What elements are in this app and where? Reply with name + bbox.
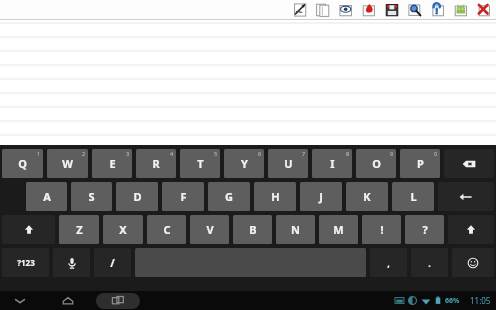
staticText: C bbox=[163, 222, 171, 237]
button[interactable]: J bbox=[300, 182, 342, 211]
button[interactable]: K bbox=[346, 182, 388, 211]
button[interactable]: N bbox=[276, 215, 315, 244]
button[interactable]: Hide keyboard bbox=[6, 292, 34, 310]
staticText: 8 bbox=[346, 150, 350, 157]
staticText: ! bbox=[380, 222, 384, 237]
staticText: P bbox=[417, 156, 424, 171]
button[interactable]: Search bbox=[406, 1, 424, 19]
staticText: / bbox=[110, 255, 115, 270]
button[interactable]: H bbox=[254, 182, 296, 211]
staticText: Q bbox=[18, 156, 27, 171]
staticText: 6 bbox=[258, 150, 262, 157]
staticText: Z bbox=[76, 222, 83, 237]
button[interactable]: T bbox=[180, 149, 220, 178]
staticText: A bbox=[43, 189, 51, 204]
staticText: ?123 bbox=[17, 257, 35, 268]
button[interactable]: R bbox=[136, 149, 176, 178]
button[interactable]: backspace bbox=[444, 149, 494, 178]
staticText: U bbox=[284, 156, 293, 171]
staticText: F bbox=[180, 189, 187, 204]
button[interactable]: W bbox=[47, 149, 88, 178]
button[interactable]: Recent apps bbox=[96, 293, 140, 309]
staticText: ? bbox=[422, 222, 428, 237]
button[interactable]: X bbox=[103, 215, 143, 244]
staticText: . bbox=[428, 257, 431, 269]
button[interactable]: B bbox=[233, 215, 272, 244]
staticText: L bbox=[410, 189, 417, 204]
staticText: O bbox=[372, 156, 381, 171]
button[interactable]: Save bbox=[383, 1, 401, 19]
button[interactable]: E bbox=[92, 149, 132, 178]
button[interactable]: enter bbox=[438, 182, 494, 211]
button[interactable]: ?123 bbox=[2, 248, 49, 277]
staticText: J bbox=[319, 189, 323, 204]
button[interactable]: A bbox=[26, 182, 67, 211]
button[interactable]: Close bbox=[475, 1, 493, 19]
staticText: Y bbox=[241, 156, 248, 171]
button[interactable]: , bbox=[370, 248, 407, 277]
button[interactable]: Home bbox=[54, 292, 82, 310]
staticText: , bbox=[387, 257, 390, 269]
staticText: N bbox=[291, 222, 300, 237]
staticText: M bbox=[333, 222, 344, 237]
staticText: T bbox=[197, 156, 204, 171]
staticText: 9 bbox=[390, 150, 394, 157]
button[interactable]: Z bbox=[59, 215, 99, 244]
staticText: B bbox=[249, 222, 257, 237]
staticText: I bbox=[330, 156, 335, 171]
staticText: 5 bbox=[214, 150, 218, 157]
button[interactable]: shift bbox=[448, 215, 494, 244]
staticText: V bbox=[206, 222, 214, 237]
button[interactable]: L bbox=[392, 182, 434, 211]
staticText: W bbox=[62, 156, 73, 171]
button[interactable]: Undo bbox=[291, 1, 309, 19]
button[interactable]: Q bbox=[2, 149, 43, 178]
button[interactable]: New page bbox=[314, 1, 332, 19]
button[interactable]: M bbox=[319, 215, 358, 244]
staticText: R bbox=[152, 156, 160, 171]
staticText: 2 bbox=[82, 150, 86, 157]
button[interactable]: / bbox=[94, 248, 131, 277]
staticText: S bbox=[88, 189, 95, 204]
staticText: E bbox=[109, 156, 116, 171]
staticText: K bbox=[363, 189, 371, 204]
button[interactable]: Ink colour bbox=[360, 1, 378, 19]
button[interactable]: emoji bbox=[452, 248, 494, 277]
button[interactable]: ? bbox=[405, 215, 444, 244]
button[interactable]: . bbox=[411, 248, 448, 277]
button[interactable]: shift bbox=[2, 215, 55, 244]
button[interactable]: D bbox=[116, 182, 158, 211]
button[interactable]: Y bbox=[224, 149, 264, 178]
button[interactable]: U bbox=[268, 149, 308, 178]
button[interactable]: View bbox=[337, 1, 355, 19]
button[interactable]: S bbox=[71, 182, 112, 211]
button[interactable]: P bbox=[400, 149, 440, 178]
staticText: 66% bbox=[445, 296, 460, 306]
button[interactable]: Help bbox=[429, 1, 447, 19]
button[interactable]: F bbox=[162, 182, 204, 211]
staticText: 4 bbox=[170, 150, 174, 157]
staticText: 3 bbox=[126, 150, 130, 157]
button[interactable]: ! bbox=[362, 215, 401, 244]
staticText: 7 bbox=[302, 150, 306, 157]
staticText: 0 bbox=[434, 150, 438, 157]
button[interactable]: I bbox=[312, 149, 352, 178]
staticText: X bbox=[119, 222, 127, 237]
button[interactable]: C bbox=[147, 215, 186, 244]
staticText: D bbox=[133, 189, 142, 204]
button[interactable]: O bbox=[356, 149, 396, 178]
button[interactable]: G bbox=[208, 182, 250, 211]
button[interactable]: mic bbox=[53, 248, 90, 277]
staticText: 1 bbox=[37, 150, 41, 157]
staticText: H bbox=[271, 189, 280, 204]
staticText: 11:05 bbox=[470, 295, 491, 306]
staticText: G bbox=[225, 189, 233, 204]
button[interactable]: V bbox=[190, 215, 229, 244]
button[interactable]: Share bbox=[452, 1, 470, 19]
